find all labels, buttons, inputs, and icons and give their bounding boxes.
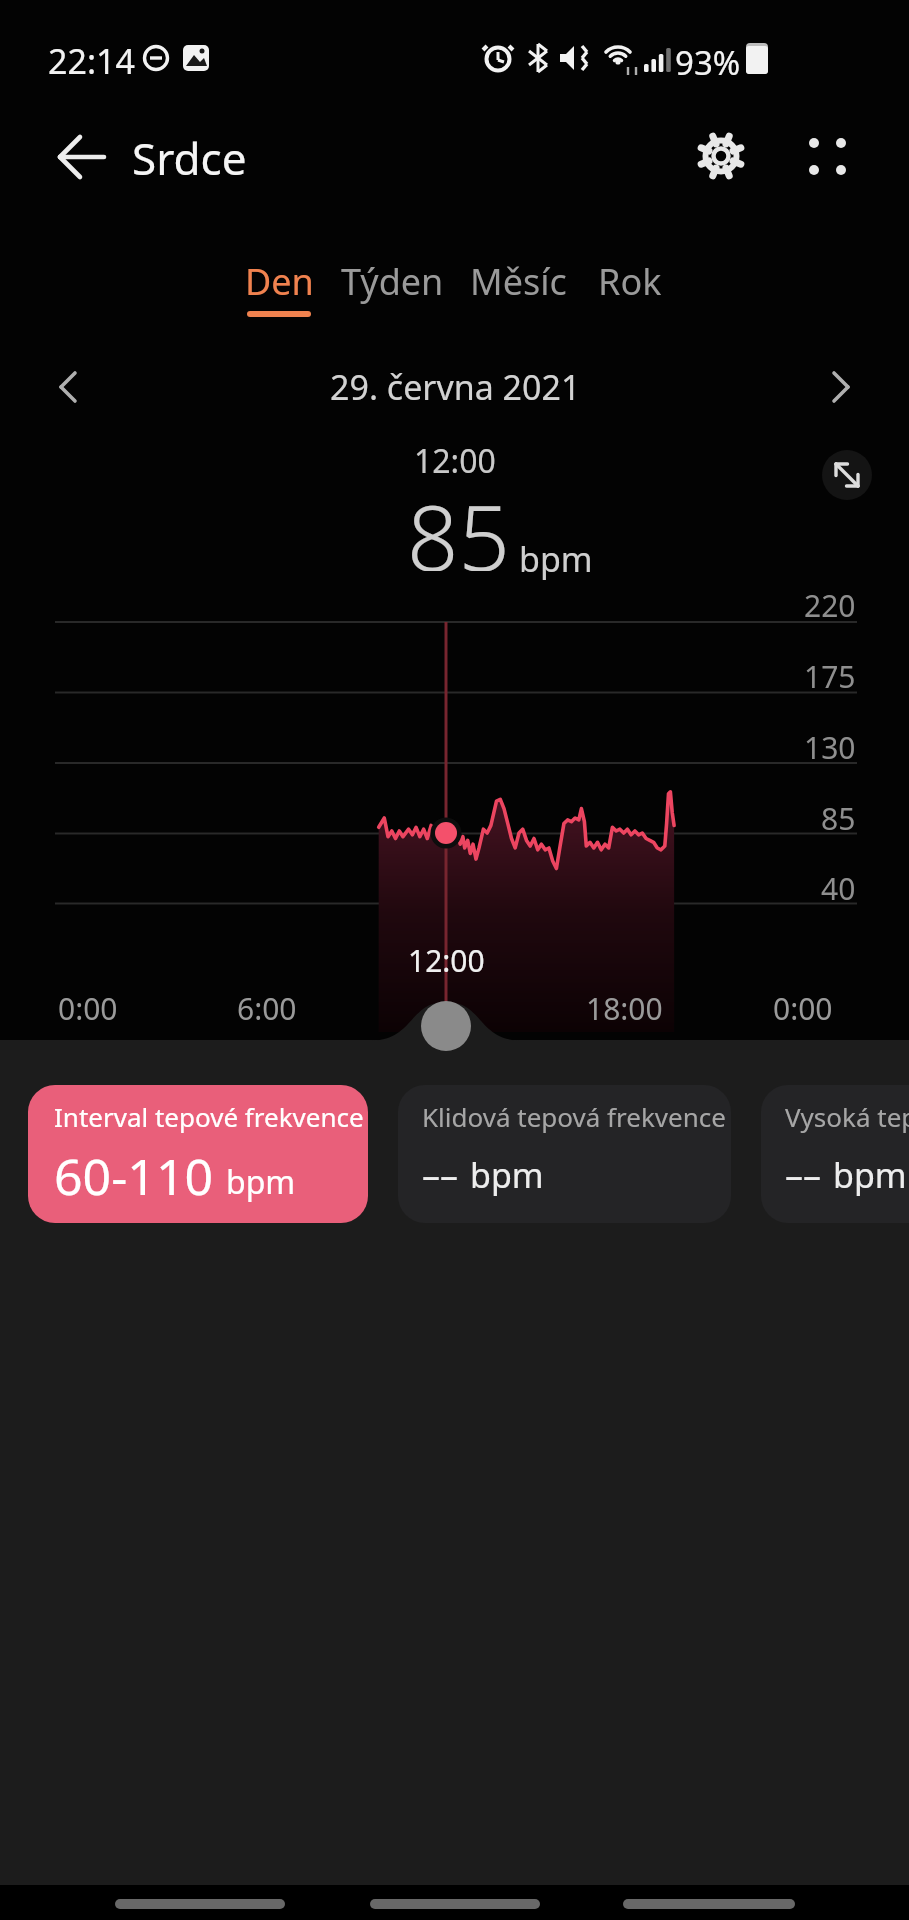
staticText: –– — [785, 1150, 821, 1199]
staticText: 22:14 — [48, 38, 135, 84]
staticText: bpm — [226, 1160, 296, 1204]
staticText: Vysoká tepová frekvence — [785, 1099, 909, 1134]
button[interactable] — [694, 129, 748, 183]
staticText: 0:00 — [773, 988, 833, 1028]
staticText: 175 — [804, 656, 856, 696]
button[interactable]: Interval tepové frekvence — [28, 1085, 368, 1223]
button[interactable]: Den — [232, 252, 326, 310]
staticText: Týden — [341, 257, 444, 306]
staticText: 40 — [821, 868, 856, 908]
button[interactable] — [798, 128, 858, 186]
button[interactable]: Rok — [586, 252, 674, 310]
button[interactable] — [813, 359, 869, 415]
staticText: bpm — [519, 536, 593, 582]
staticText: Klidová tepová frekvence — [422, 1099, 726, 1134]
button[interactable]: Klidová tepová frekvence — [398, 1085, 731, 1223]
button[interactable] — [822, 450, 872, 500]
staticText: Srdce — [132, 128, 247, 188]
staticText: 93% — [675, 40, 741, 85]
staticText: Den — [245, 257, 314, 306]
staticText: Měsíc — [470, 257, 567, 306]
button[interactable] — [40, 359, 96, 415]
button[interactable] — [370, 1899, 540, 1909]
staticText: 12:00 — [414, 439, 496, 483]
staticText: 18:00 — [586, 988, 663, 1028]
staticText: 85 — [821, 798, 856, 838]
staticText: 60-110 — [54, 1142, 214, 1210]
staticText: 0:00 — [58, 988, 118, 1028]
staticText: bpm — [833, 1152, 907, 1198]
staticText: 85 — [407, 475, 510, 571]
button[interactable] — [115, 1899, 285, 1909]
staticText: 130 — [804, 727, 856, 767]
button[interactable] — [421, 1001, 471, 1051]
staticText: 220 — [804, 585, 856, 625]
staticText: –– — [422, 1150, 458, 1199]
staticText: Rok — [598, 257, 662, 306]
button[interactable]: Týden — [334, 252, 450, 310]
button[interactable]: Měsíc — [460, 252, 576, 310]
staticText: 6:00 — [237, 988, 297, 1028]
button[interactable]: Vysoká tepová frekvence — [761, 1085, 909, 1223]
staticText: bpm — [470, 1152, 544, 1198]
button[interactable] — [48, 128, 108, 186]
button[interactable] — [623, 1899, 795, 1909]
staticText: Interval tepové frekvence — [54, 1099, 364, 1134]
staticText: 29. června 2021 — [330, 364, 581, 410]
staticText: 12:00 — [408, 940, 485, 980]
